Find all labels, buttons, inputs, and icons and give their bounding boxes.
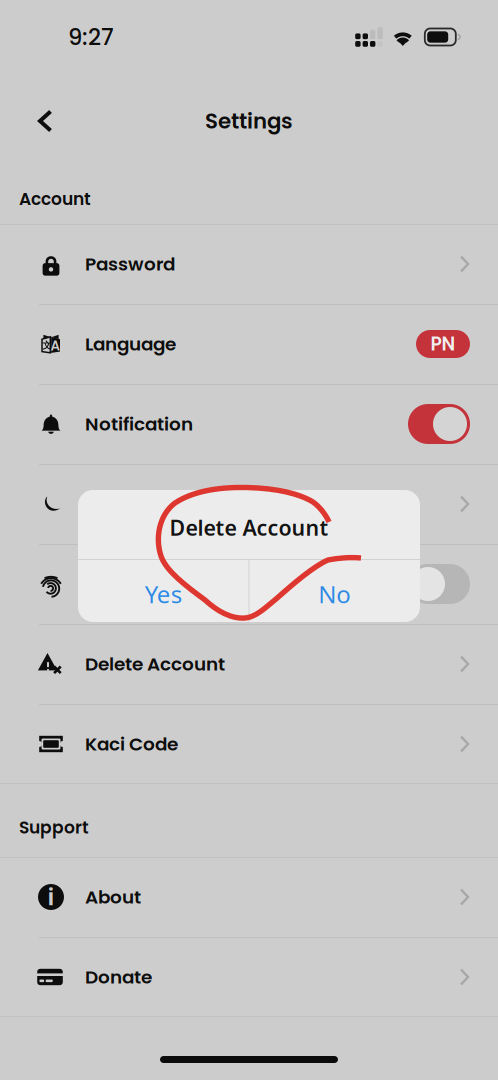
staticText: Support [19, 816, 89, 839]
staticText: Donate [85, 964, 152, 990]
staticText: Settings [205, 106, 293, 136]
button[interactable]: Delete Account [0, 624, 498, 704]
button[interactable]: Dark Mode [0, 464, 498, 544]
staticText: Notification [85, 411, 193, 437]
staticText: No [318, 578, 351, 610]
button[interactable]: Notification toggle [408, 404, 470, 444]
button[interactable]: A [0, 304, 498, 384]
button[interactable]: Notification [0, 384, 498, 464]
staticText: 9:27 [68, 21, 114, 53]
staticText: PN [430, 331, 455, 357]
staticText: Delete Account [169, 513, 328, 542]
staticText: Account [19, 187, 91, 211]
staticText: Touch ID [85, 571, 165, 597]
staticText: Kaci Code [85, 731, 178, 757]
staticText: Language [85, 331, 176, 357]
staticText: Dark Mode [85, 491, 184, 517]
staticText: A [51, 336, 61, 355]
staticText: About [85, 884, 141, 910]
staticText: 文 [42, 340, 51, 351]
button[interactable]: Password [0, 224, 498, 304]
button[interactable]: Touch ID [0, 544, 498, 624]
staticText: Delete Account [85, 651, 225, 677]
button[interactable]: Kaci Code [0, 704, 498, 784]
button[interactable]: Yes [78, 560, 248, 622]
button[interactable]: No [249, 560, 420, 622]
button[interactable]: Touch ID toggle [408, 564, 470, 604]
button[interactable]: i [0, 857, 498, 937]
button[interactable]: Donate [0, 937, 498, 1017]
staticText: Yes [145, 578, 182, 610]
staticText: i [47, 881, 54, 911]
button[interactable]: Back [21, 95, 70, 146]
staticText: Password [85, 251, 175, 277]
